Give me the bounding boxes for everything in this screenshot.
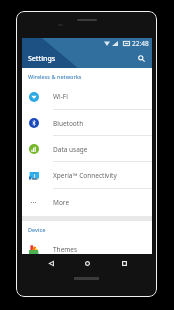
button[interactable]: Search (135, 52, 148, 65)
button[interactable]: Home (79, 255, 95, 271)
staticText: Device (28, 226, 46, 233)
staticText: Wi-Fi (53, 92, 68, 101)
staticText: Data usage (53, 145, 88, 154)
button[interactable]: More (22, 189, 152, 216)
button[interactable]: Recents (116, 255, 132, 271)
staticText: Wireless & networks (28, 73, 82, 80)
staticText: Settings (28, 54, 56, 64)
button[interactable]: Back (43, 255, 59, 271)
staticText: Xperia™ Connectivity (53, 171, 117, 180)
staticText: 22:48 (132, 39, 149, 48)
button[interactable]: Themes (22, 236, 152, 262)
button[interactable]: Data usage (22, 136, 152, 162)
button[interactable]: Xperia™ Connectivity (22, 162, 152, 189)
button[interactable]: Bluetooth (22, 110, 152, 136)
staticText: More (53, 198, 70, 207)
staticText: Bluetooth (53, 119, 84, 128)
staticText: Themes (53, 245, 78, 254)
button[interactable]: Wi-Fi (22, 83, 152, 110)
